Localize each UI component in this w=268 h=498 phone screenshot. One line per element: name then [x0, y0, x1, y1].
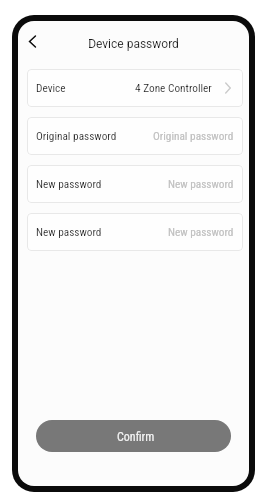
staticText: New password — [168, 226, 234, 239]
button[interactable]: New password — [27, 213, 243, 251]
staticText: Device password — [88, 37, 179, 51]
staticText: New password — [36, 226, 102, 239]
staticText: Original password — [36, 130, 117, 143]
button[interactable]: Back — [21, 30, 43, 52]
button[interactable]: Original password — [27, 117, 243, 155]
staticText: Confirm — [117, 430, 155, 444]
staticText: 4 Zone Controller — [135, 82, 212, 95]
button[interactable]: New password — [27, 165, 243, 203]
button[interactable]: Confirm — [36, 420, 231, 452]
staticText: New password — [168, 178, 234, 191]
staticText: Original password — [153, 130, 234, 143]
staticText: Device — [36, 82, 66, 95]
button[interactable]: Device — [27, 69, 243, 107]
staticText: New password — [36, 178, 102, 191]
